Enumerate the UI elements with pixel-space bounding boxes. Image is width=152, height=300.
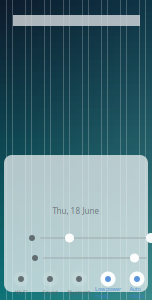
button[interactable]: Low power mode bbox=[95, 270, 121, 298]
staticText: Bluetooth bbox=[67, 289, 90, 296]
button[interactable]: Bluetooth bbox=[66, 270, 92, 298]
button[interactable]: Wi-Fi bbox=[8, 270, 34, 298]
staticText: Low power mode bbox=[95, 285, 121, 300]
staticText: Wi-Fi bbox=[15, 289, 27, 296]
staticText: Auto rotate bbox=[129, 285, 144, 300]
staticText: Thu, 18 June bbox=[52, 206, 99, 216]
button[interactable]: Sound bbox=[37, 270, 63, 298]
staticText: Sound bbox=[42, 289, 57, 296]
button[interactable]: Auto rotate bbox=[124, 270, 150, 298]
